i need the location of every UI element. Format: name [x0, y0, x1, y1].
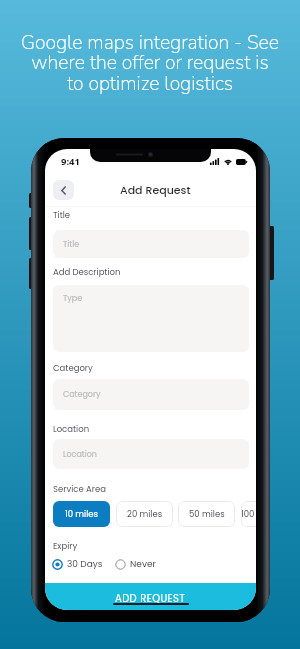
staticText: Title [53, 209, 71, 221]
button[interactable]: Category [53, 379, 249, 410]
staticText: Title [63, 239, 80, 250]
button[interactable]: Location [53, 439, 249, 469]
staticText: ADD REQUEST [115, 591, 186, 605]
button[interactable]: ADD REQUEST [45, 583, 256, 610]
staticText: Category [53, 362, 93, 374]
button[interactable]: 100 miles [241, 501, 256, 527]
staticText: Add Description [53, 266, 121, 278]
button[interactable]: Title [53, 230, 249, 258]
staticText: Expiry [53, 540, 78, 552]
staticText: 30 Days [67, 558, 103, 571]
button[interactable]: 50 miles [178, 501, 235, 527]
staticText: Type [63, 293, 83, 304]
staticText: Add Request [120, 182, 191, 197]
staticText: 20 miles [127, 508, 163, 520]
staticText: Service Area [53, 483, 106, 495]
staticText: 10 miles [65, 508, 98, 520]
staticText: Category [63, 389, 101, 400]
staticText: 9:41 [61, 155, 80, 168]
staticText: 100 miles [241, 508, 256, 520]
button[interactable]: 30 Days [52, 558, 103, 571]
staticText: 50 miles [189, 508, 225, 520]
staticText: Never [130, 558, 156, 571]
staticText: Location [53, 423, 90, 435]
staticText: Google maps integration - See where the … [0, 29, 300, 97]
button[interactable]: 10 miles [53, 501, 110, 527]
button[interactable]: Never [115, 558, 156, 571]
button[interactable]: 20 miles [116, 501, 173, 527]
staticText: Location [63, 449, 97, 460]
button[interactable]: Back [53, 180, 74, 200]
